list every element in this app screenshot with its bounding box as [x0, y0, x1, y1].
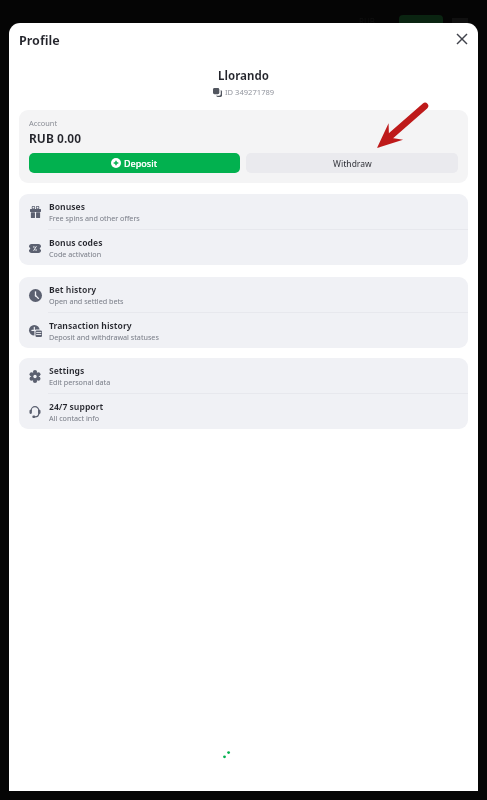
staticText: Free spins and other offers [49, 213, 140, 223]
button[interactable]: 24/7 support [19, 394, 468, 429]
staticText: RUB [359, 16, 376, 27]
staticText: Bonus codes [49, 237, 103, 249]
staticText: Edit personal data [49, 377, 111, 387]
staticText: Open and settled bets [49, 296, 124, 306]
button[interactable]: Bonuses [19, 194, 468, 229]
button[interactable]: Withdraw [246, 153, 458, 173]
staticText: 24/7 support [49, 401, 104, 413]
staticText: Transaction history [49, 320, 132, 332]
staticText: Withdraw [333, 158, 372, 169]
button[interactable]: ID 349271789 [9, 87, 478, 97]
staticText: Bet history [49, 284, 97, 296]
button[interactable]: Deposit [29, 153, 240, 173]
staticText: Profile [19, 32, 60, 49]
staticText: Llorando [9, 68, 478, 84]
button[interactable]: Close [453, 30, 471, 48]
staticText: Settings [49, 365, 85, 377]
button[interactable]: Bonus codes [19, 230, 468, 265]
staticText: Account [29, 118, 58, 128]
staticText: ID 349271789 [225, 87, 275, 97]
staticText: All contact info [49, 413, 100, 423]
button[interactable]: Bet history [19, 277, 468, 312]
staticText: RUB 0.00 [29, 130, 82, 146]
button[interactable]: Transaction history [19, 313, 468, 348]
staticText: Deposit and withdrawal statuses [49, 332, 159, 342]
staticText: Code activation [49, 249, 102, 259]
button[interactable]: Settings [19, 358, 468, 393]
staticText: Deposit [124, 157, 158, 169]
staticText: Bonuses [49, 201, 86, 213]
